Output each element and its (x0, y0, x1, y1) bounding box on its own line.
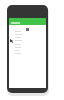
other: Pointer (10, 39, 13, 43)
button[interactable] (9, 30, 46, 33)
button[interactable] (9, 52, 46, 55)
button[interactable] (9, 18, 46, 25)
button[interactable] (9, 36, 46, 39)
button[interactable] (9, 39, 46, 42)
button[interactable] (9, 46, 46, 49)
button[interactable] (9, 49, 46, 52)
button[interactable] (9, 43, 46, 46)
button[interactable] (9, 33, 46, 36)
